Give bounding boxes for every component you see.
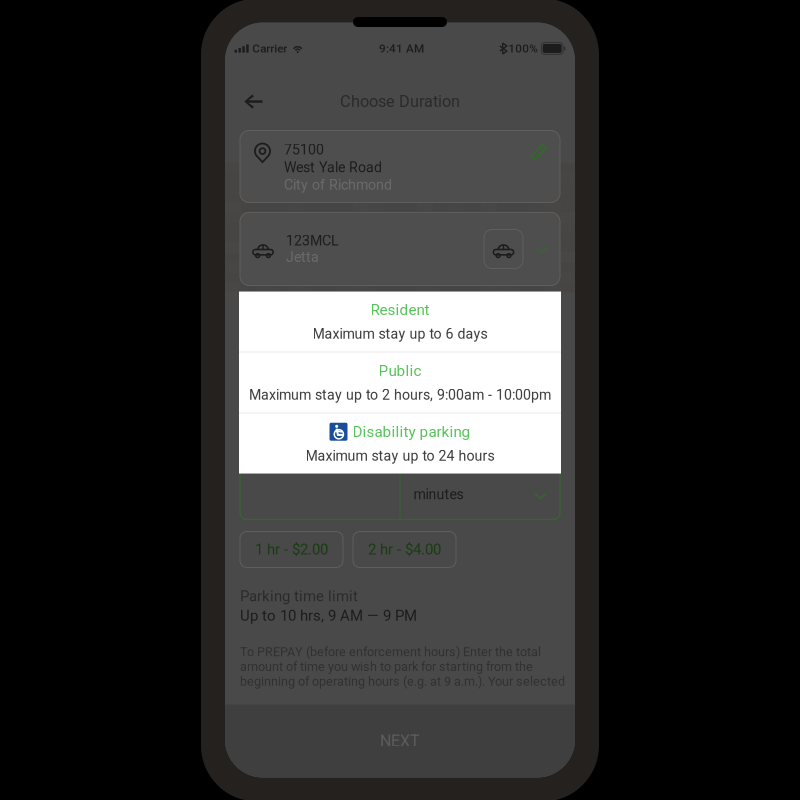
button[interactable]: 1 hr - $2.00 [240, 531, 343, 567]
staticText: Maximum stay up to 2 hours, 9:00am - 10:… [249, 387, 551, 403]
staticText: NEXT [380, 732, 420, 750]
staticText: 75100 [284, 141, 324, 158]
staticText: 1 hr - $2.00 [255, 541, 328, 558]
staticText: Choose Duration [340, 92, 460, 111]
staticText: Up to 10 hrs, 9 AM — 9 PM [240, 607, 417, 624]
staticText: 9:41 AM [379, 42, 424, 55]
staticText: To PREPAY (before enforcement hours) Ent… [240, 644, 565, 689]
staticText: Maximum stay up to 24 hours [305, 448, 494, 464]
staticText: Carrier [252, 42, 287, 55]
staticText: 2 hr - $4.00 [368, 541, 441, 558]
staticText: minutes [413, 486, 463, 503]
button[interactable]: NEXT [225, 704, 575, 777]
button[interactable]: Back [231, 80, 275, 122]
button[interactable]: 123MCL [240, 212, 560, 285]
staticText: Resident [370, 301, 429, 319]
staticText: West Yale Road [284, 159, 382, 176]
button[interactable]: 75100 [240, 130, 560, 202]
staticText: Jetta [286, 249, 319, 266]
staticText: 100% [508, 42, 538, 55]
staticText: Public [378, 362, 421, 380]
staticText: Disability parking [352, 423, 470, 441]
staticText: City of Richmond [284, 177, 392, 193]
staticText: Parking time limit [240, 587, 358, 605]
staticText: 123MCL [286, 232, 339, 249]
staticText: Maximum stay up to 6 days [312, 326, 487, 342]
button[interactable]: 2 hr - $4.00 [353, 531, 456, 567]
